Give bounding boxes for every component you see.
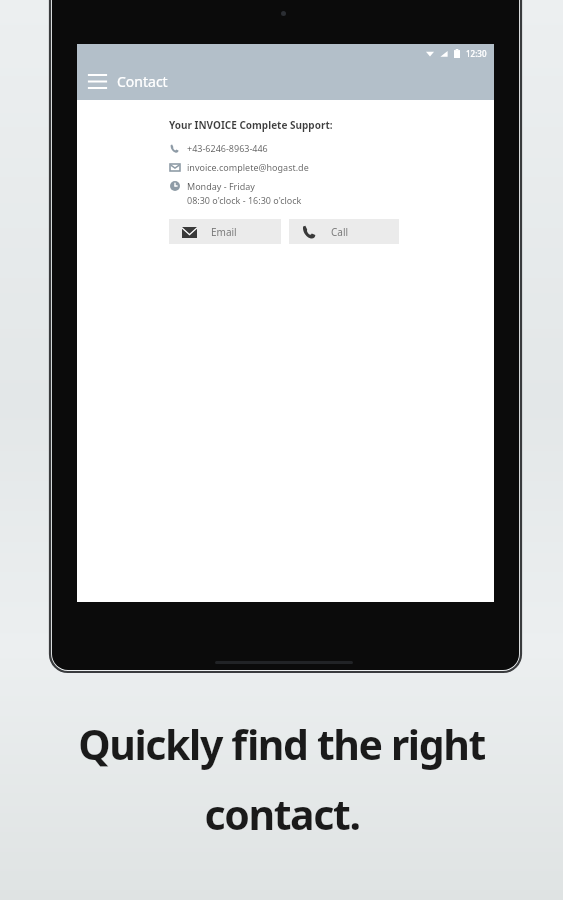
button[interactable]: Email [169,219,281,244]
staticText: Quickly find the right [78,716,485,772]
staticText: 12:30 [466,48,487,59]
staticText: Call [331,225,349,239]
staticText: 08:30 o'clock - 16:30 o'clock [187,194,302,206]
staticText: contact. [204,786,360,842]
staticText: Email [211,225,237,239]
staticText: invoice.complete@hogast.de [187,161,309,173]
staticText: Contact [117,72,168,91]
staticText: Monday - Friday [187,180,255,192]
button[interactable]: Call [289,219,399,244]
button[interactable]: Open navigation menu [83,67,111,95]
staticText: +43-6246-8963-446 [187,142,268,154]
staticText: Your INVOICE Complete Support: [169,118,333,132]
